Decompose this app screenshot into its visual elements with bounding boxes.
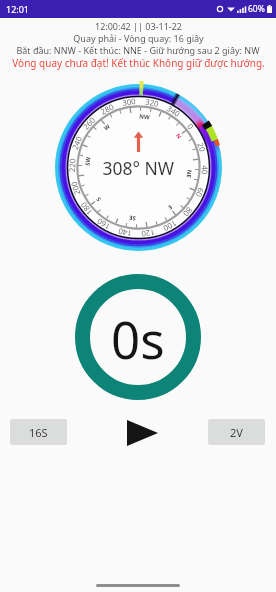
- staticText: Bắt đầu: NNW - Kết thúc: NNE - Giữ hướng…: [16, 44, 260, 56]
- staticText: 0s: [111, 304, 165, 373]
- button[interactable]: 2V: [208, 419, 265, 445]
- staticText: 60%: [248, 3, 265, 15]
- button[interactable]: 0s: [75, 274, 201, 400]
- staticText: Vòng quay chưa đạt! Kết thúc Không giữ đ…: [12, 56, 265, 70]
- staticText: 2V: [230, 425, 243, 440]
- staticText: 12:01: [6, 3, 30, 15]
- staticText: 16S: [29, 425, 48, 440]
- button[interactable]: Play: [121, 420, 163, 446]
- staticText: Quay phải - Vòng quay: 16 giây: [73, 32, 204, 44]
- button[interactable]: 16S: [10, 419, 67, 445]
- staticText: 12:00:42 || 03-11-22: [95, 20, 182, 32]
